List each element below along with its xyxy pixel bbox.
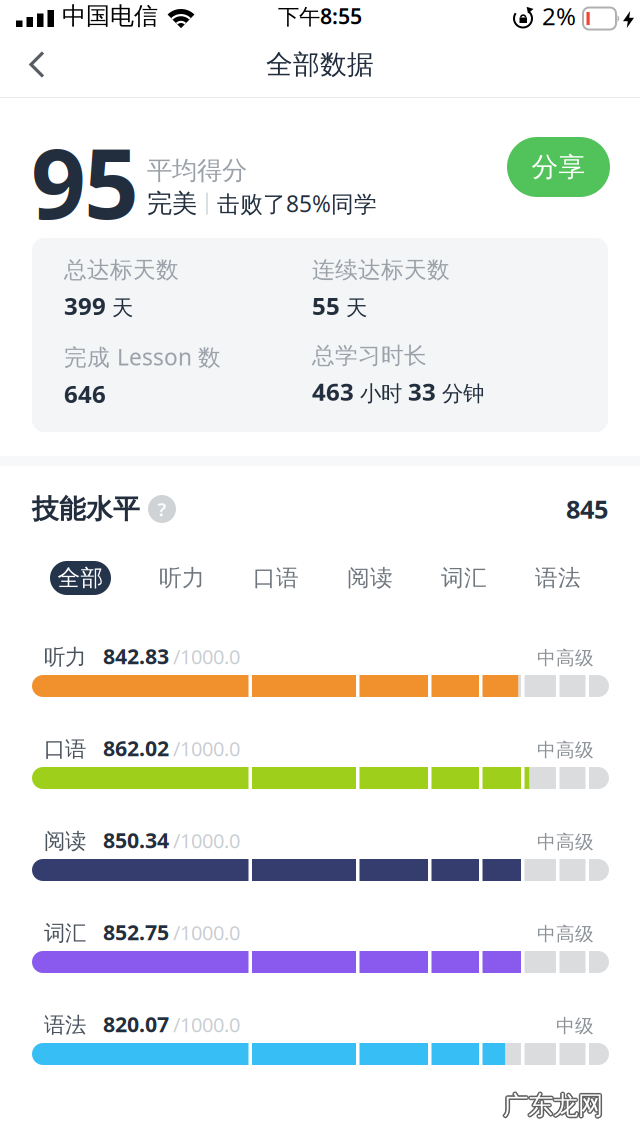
- staticText: /1000.0: [173, 919, 240, 946]
- staticText: 分钟: [442, 381, 484, 407]
- button[interactable]: 分享: [507, 137, 610, 197]
- staticText: 阅读: [347, 564, 393, 592]
- staticText: 广东龙网: [502, 1089, 602, 1120]
- staticText: 词汇: [441, 564, 487, 592]
- staticText: 463: [312, 376, 354, 407]
- staticText: 天: [346, 295, 367, 321]
- staticText: /1000.0: [173, 643, 240, 670]
- button[interactable]: 语法: [535, 564, 581, 592]
- staticText: 820.07: [103, 1010, 169, 1038]
- button[interactable]: Back: [0, 32, 46, 96]
- staticText: 55: [312, 290, 340, 322]
- staticText: /1000.0: [173, 735, 240, 762]
- staticText: 广东龙网: [504, 1089, 604, 1120]
- staticText: 小时: [360, 381, 402, 407]
- staticText: 全部: [57, 564, 103, 592]
- staticText: 总达标天数: [64, 256, 179, 284]
- staticText: 广东龙网: [503, 1091, 603, 1122]
- button[interactable]: 词汇: [441, 564, 487, 592]
- staticText: 845: [566, 492, 608, 526]
- button[interactable]: What is this: [148, 495, 176, 523]
- staticText: 中高级: [537, 922, 594, 945]
- staticText: 广东龙网: [503, 1090, 603, 1121]
- staticText: 中国电信: [62, 1, 158, 31]
- staticText: 阅读: [44, 828, 86, 854]
- button[interactable]: 听力: [159, 564, 205, 592]
- staticText: 862.02: [103, 734, 169, 762]
- staticText: 总学习时长: [312, 342, 427, 369]
- staticText: 听力: [44, 644, 86, 670]
- staticText: 广东龙网: [502, 1091, 602, 1122]
- staticText: 广东龙网: [504, 1091, 604, 1122]
- staticText: 852.75: [103, 918, 169, 946]
- staticText: 口语: [44, 736, 86, 762]
- staticText: 词汇: [44, 920, 86, 946]
- staticText: 95: [31, 118, 139, 245]
- staticText: 中高级: [537, 830, 594, 853]
- staticText: 33: [408, 376, 436, 407]
- button[interactable]: 全部: [50, 561, 111, 595]
- staticText: 听力: [159, 564, 205, 592]
- staticText: 中高级: [537, 738, 594, 761]
- staticText: 技能水平: [32, 493, 140, 525]
- staticText: 语法: [535, 564, 581, 592]
- staticText: 850.34: [103, 826, 169, 854]
- staticText: 广东龙网: [504, 1090, 604, 1121]
- staticText: 全部数据: [266, 48, 374, 81]
- staticText: 中级: [556, 1014, 594, 1037]
- staticText: 广东龙网: [502, 1090, 602, 1121]
- staticText: 中高级: [537, 646, 594, 669]
- staticText: 842.83: [103, 642, 169, 670]
- staticText: 399: [64, 290, 106, 322]
- staticText: /1000.0: [173, 1011, 240, 1038]
- staticText: 2%: [542, 0, 576, 32]
- staticText: 分享: [531, 151, 585, 183]
- staticText: 连续达标天数: [312, 256, 450, 284]
- staticText: 646: [64, 378, 106, 410]
- staticText: 下午8:55: [278, 2, 362, 30]
- staticText: 语法: [44, 1012, 86, 1038]
- staticText: ?: [157, 497, 166, 521]
- staticText: 击败了85%同学: [217, 188, 377, 219]
- button[interactable]: 阅读: [347, 564, 393, 592]
- staticText: 完美: [147, 188, 197, 219]
- button[interactable]: 口语: [253, 564, 299, 592]
- staticText: 天: [112, 295, 133, 321]
- staticText: /1000.0: [173, 827, 240, 854]
- staticText: 平均得分: [147, 155, 247, 186]
- staticText: 口语: [253, 564, 299, 592]
- staticText: 完成 Lesson 数: [64, 342, 221, 372]
- staticText: 广东龙网: [503, 1089, 603, 1120]
